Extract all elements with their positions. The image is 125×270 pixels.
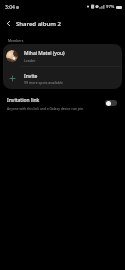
staticText: Members — [8, 38, 24, 43]
button[interactable]: Back — [0, 14, 16, 33]
staticText: Anyone with this link and a Galaxy devic… — [7, 106, 84, 110]
staticText: Mihai Matei (you) — [24, 50, 65, 57]
staticText: 3:04 — [5, 4, 15, 11]
staticText: Shared album 2 — [16, 20, 61, 28]
staticText: 97% — [106, 4, 115, 10]
staticText: Invite — [24, 73, 38, 80]
staticText: Invitation link — [7, 97, 40, 104]
button[interactable]: Mihai Matei (you) — [3, 44, 122, 66]
button[interactable]: Invitation link — [0, 92, 125, 114]
staticText: 99 more spots available — [24, 80, 63, 85]
staticText: Leader — [24, 58, 36, 63]
button[interactable]: Invite — [3, 67, 122, 89]
